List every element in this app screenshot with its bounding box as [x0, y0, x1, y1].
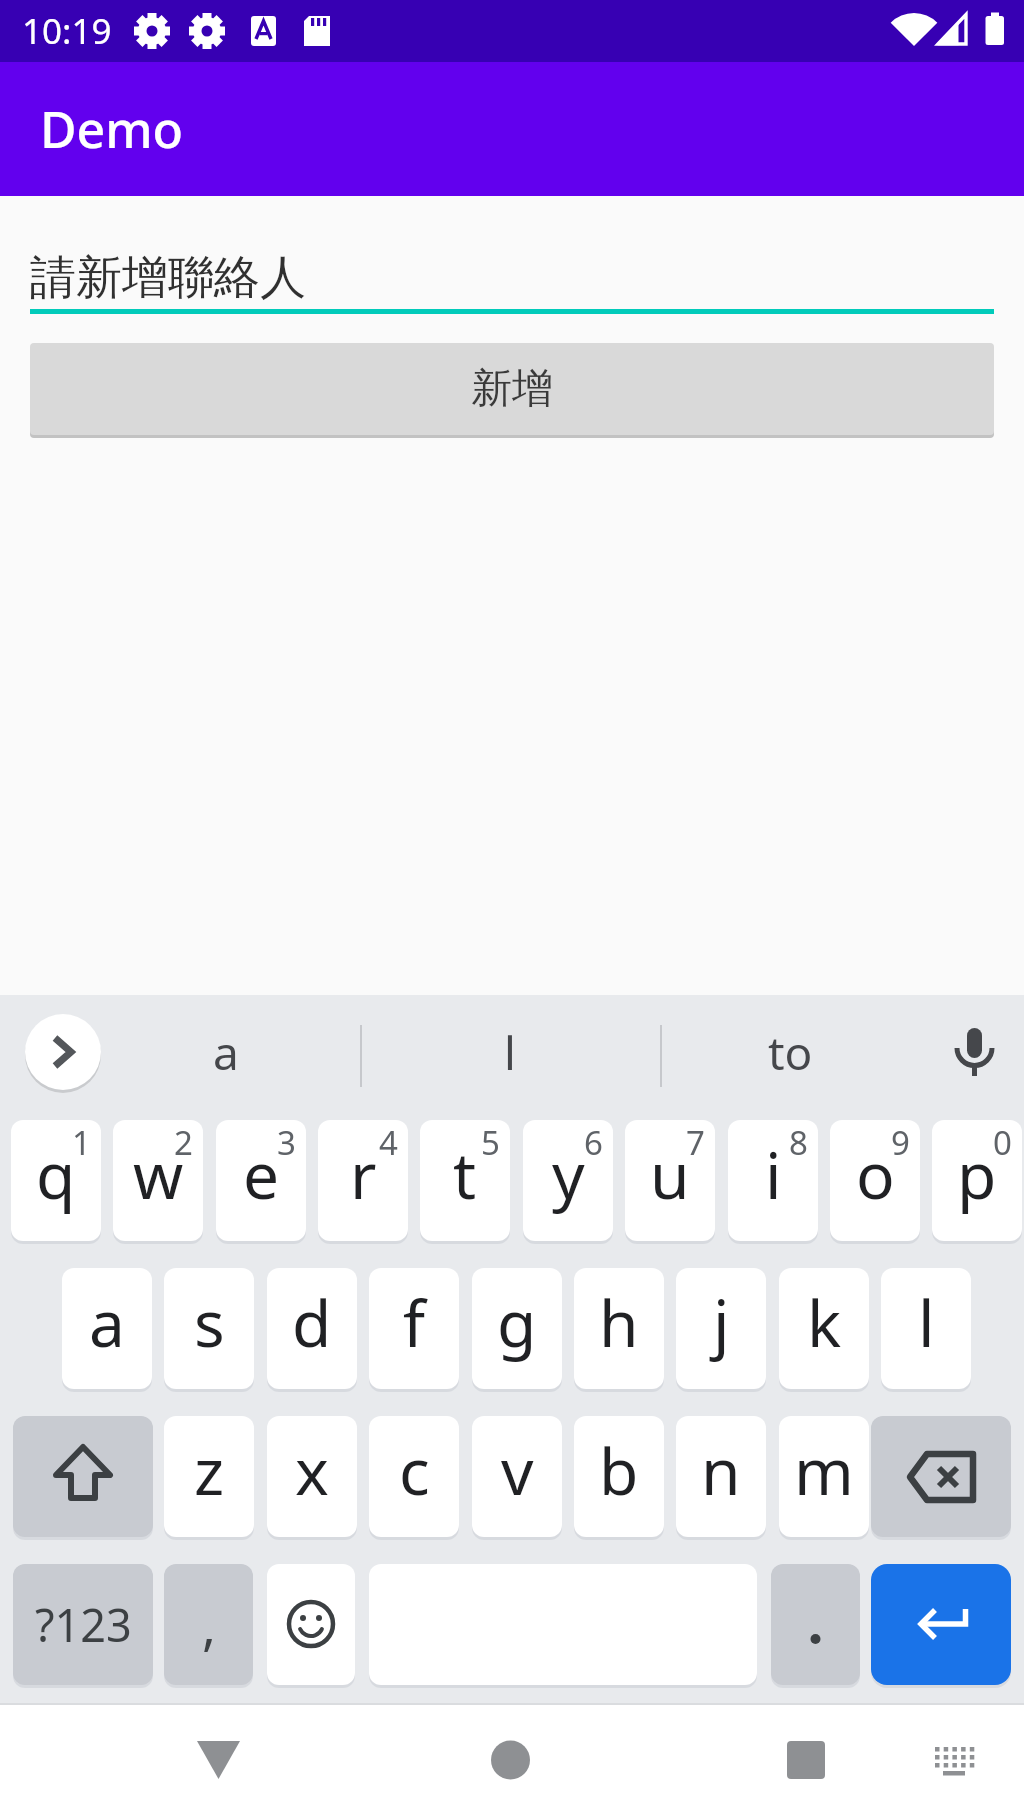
button[interactable]: e — [216, 1120, 306, 1241]
staticText: 0 — [993, 1120, 1012, 1165]
button[interactable]: g — [472, 1268, 562, 1389]
button[interactable]: to — [704, 1014, 876, 1090]
staticText: y — [552, 1131, 585, 1218]
staticText: l — [918, 1279, 935, 1366]
staticText: 5 — [481, 1120, 500, 1165]
staticText: Demo — [40, 95, 184, 163]
button[interactable]: d — [267, 1268, 357, 1389]
button[interactable]: l — [881, 1268, 971, 1389]
staticText: a — [89, 1279, 125, 1366]
staticText: s — [194, 1279, 225, 1366]
staticText: 8 — [789, 1120, 808, 1165]
button[interactable]: s — [164, 1268, 254, 1389]
staticText: x — [295, 1427, 329, 1514]
staticText: i — [765, 1131, 782, 1218]
button[interactable]: w — [113, 1120, 203, 1241]
staticText: q — [36, 1131, 76, 1218]
staticText: d — [292, 1279, 332, 1366]
button[interactable] — [940, 1014, 1008, 1090]
button[interactable] — [871, 1416, 1011, 1537]
staticText: o — [856, 1131, 895, 1218]
staticText: r — [350, 1131, 377, 1218]
staticText: 1 — [72, 1120, 91, 1165]
button[interactable] — [468, 1718, 552, 1802]
button[interactable]: j — [676, 1268, 766, 1389]
staticText: 請新增聯絡人 — [30, 249, 306, 307]
button[interactable]: t — [420, 1120, 510, 1241]
staticText: 3 — [277, 1120, 296, 1165]
staticText: n — [701, 1427, 741, 1514]
staticText: 7 — [686, 1120, 705, 1165]
button[interactable]: o — [830, 1120, 920, 1241]
staticText: h — [599, 1279, 639, 1366]
staticText: u — [650, 1131, 690, 1218]
staticText: a — [213, 1021, 239, 1084]
button[interactable]: a — [140, 1014, 312, 1090]
staticText: m — [794, 1427, 854, 1514]
button[interactable] — [176, 1718, 260, 1802]
button[interactable]: n — [676, 1416, 766, 1537]
button[interactable] — [915, 1722, 995, 1802]
staticText: 9 — [891, 1120, 910, 1165]
staticText: 4 — [379, 1120, 398, 1165]
staticText: f — [403, 1279, 426, 1366]
staticText: ?123 — [35, 1594, 132, 1655]
button[interactable] — [267, 1564, 355, 1685]
staticText: p — [957, 1131, 997, 1218]
staticText: l — [504, 1021, 516, 1084]
button[interactable]: k — [779, 1268, 869, 1389]
button[interactable]: h — [574, 1268, 664, 1389]
button[interactable]: m — [779, 1416, 869, 1537]
button[interactable]: z — [164, 1416, 254, 1537]
button[interactable] — [13, 1416, 153, 1537]
staticText: g — [497, 1279, 537, 1366]
button[interactable]: f — [369, 1268, 459, 1389]
staticText: c — [399, 1427, 430, 1514]
button[interactable]: y — [523, 1120, 613, 1241]
staticText: 新增 — [471, 363, 553, 415]
button[interactable]: c — [369, 1416, 459, 1537]
button[interactable] — [25, 1014, 101, 1090]
button[interactable] — [771, 1564, 860, 1685]
staticText: to — [768, 1021, 813, 1084]
staticText: e — [243, 1131, 280, 1218]
button[interactable]: r — [318, 1120, 408, 1241]
button[interactable]: b — [574, 1416, 664, 1537]
button[interactable]: i — [728, 1120, 818, 1241]
button[interactable]: u — [625, 1120, 715, 1241]
button[interactable]: a — [62, 1268, 152, 1389]
staticText: 6 — [584, 1120, 603, 1165]
staticText: t — [453, 1131, 477, 1218]
staticText: 10:19 — [22, 7, 112, 55]
staticText: , — [202, 1589, 216, 1660]
staticText: k — [807, 1279, 842, 1366]
button[interactable] — [764, 1718, 848, 1802]
button[interactable]: ?123 — [13, 1564, 153, 1685]
button[interactable]: , — [164, 1564, 253, 1685]
staticText: v — [501, 1427, 534, 1514]
button[interactable]: l — [424, 1014, 596, 1090]
button[interactable]: q — [11, 1120, 101, 1241]
button[interactable]: x — [267, 1416, 357, 1537]
staticText: b — [599, 1427, 639, 1514]
staticText: z — [194, 1427, 225, 1514]
button[interactable] — [871, 1564, 1011, 1685]
button[interactable]: p — [932, 1120, 1022, 1241]
button[interactable]: 請新增聯絡人 — [28, 228, 994, 314]
button[interactable]: v — [472, 1416, 562, 1537]
staticText: j — [713, 1279, 730, 1366]
staticText: w — [133, 1131, 184, 1218]
button[interactable]: 新增 — [30, 343, 994, 435]
staticText: 2 — [174, 1120, 193, 1165]
